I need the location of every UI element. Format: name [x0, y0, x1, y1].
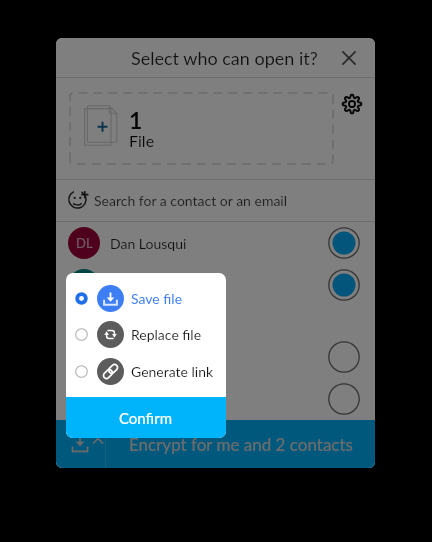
button[interactable]: Confirm — [66, 397, 226, 438]
staticText: 1 — [129, 106, 143, 134]
staticText: Dan Lousqui — [110, 235, 187, 252]
button[interactable]: MR — [56, 336, 375, 378]
staticText: File — [129, 131, 155, 150]
staticText: Generate link — [131, 363, 214, 380]
button[interactable]: Download options — [56, 420, 105, 468]
staticText: AT — [76, 277, 92, 293]
staticText: Confirm — [119, 409, 173, 427]
staticText: Encrypt for me and 2 contacts — [129, 434, 353, 454]
button[interactable]: Encrypt for me and 2 contacts — [106, 420, 375, 468]
button[interactable]: Close — [335, 44, 363, 72]
staticText: SB — [76, 391, 92, 407]
staticText: Search for a contact or an email — [94, 192, 288, 209]
button[interactable]: Replace file — [66, 317, 226, 351]
button[interactable]: AT — [56, 264, 375, 306]
button[interactable]: Settings — [340, 92, 364, 116]
button[interactable]: Save file — [66, 281, 226, 315]
staticText: Sophie Blanc — [110, 391, 190, 408]
button[interactable]: Generate link — [66, 354, 226, 388]
button[interactable]: Search for a contact or an email — [56, 180, 375, 221]
staticText: Save file — [131, 290, 183, 307]
staticText: Marc Renaud — [110, 349, 191, 366]
button[interactable]: SB — [56, 378, 375, 420]
staticText: DL — [76, 235, 93, 251]
staticText: Select who can open it? — [131, 47, 318, 69]
staticText: Replace file — [131, 326, 202, 343]
button[interactable]: DL — [56, 222, 375, 264]
staticText: Alice Turner — [110, 277, 184, 294]
